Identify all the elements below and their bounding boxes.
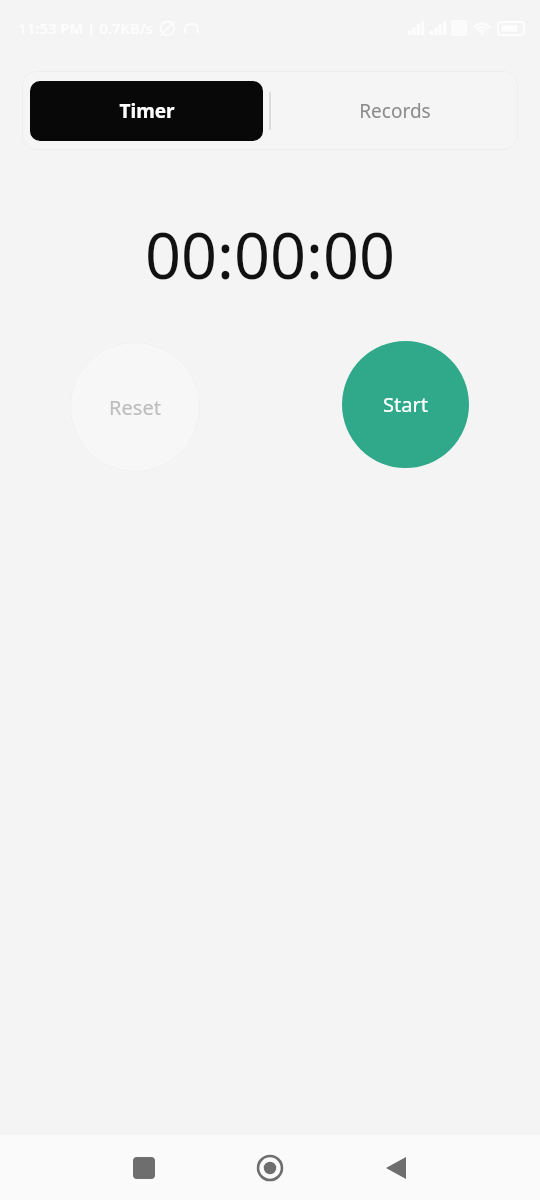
staticText: 00:00:00 [145, 212, 395, 296]
button[interactable]: Back [366, 1138, 426, 1198]
button[interactable]: Reset [70, 342, 200, 472]
button[interactable]: Timer [30, 81, 263, 141]
button[interactable]: Start [342, 341, 469, 468]
staticText: Records [359, 98, 431, 124]
button[interactable]: Recent apps [114, 1138, 174, 1198]
staticText: 11:53 PM | 0.7KB/s [18, 18, 153, 38]
staticText: Start [383, 391, 428, 418]
button[interactable]: Records [271, 81, 518, 141]
staticText: Reset [109, 394, 161, 421]
button[interactable]: Home [240, 1138, 300, 1198]
staticText: Timer [119, 98, 175, 124]
